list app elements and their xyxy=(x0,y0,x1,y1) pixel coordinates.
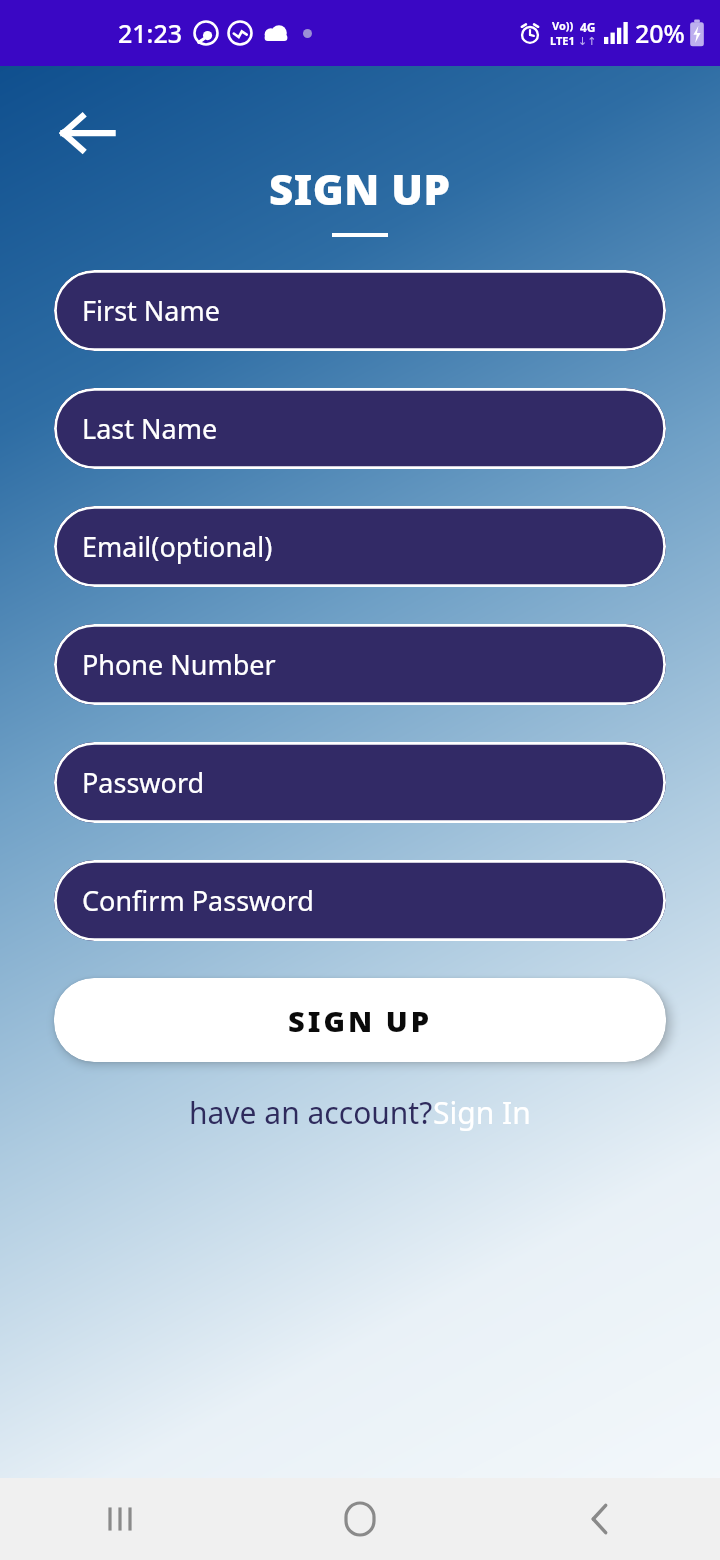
staticText: SIGN UP xyxy=(288,1001,432,1040)
button[interactable]: SIGN UP xyxy=(54,978,666,1062)
button[interactable]: Confirm Password xyxy=(54,860,666,941)
staticText: Last Name xyxy=(82,410,218,447)
button[interactable]: Sign In xyxy=(433,1092,531,1133)
button[interactable]: Back xyxy=(48,92,128,172)
staticText: 4G xyxy=(580,19,596,35)
staticText: LTE1 xyxy=(550,33,575,48)
button[interactable]: Back xyxy=(480,1478,720,1560)
staticText: 20% xyxy=(635,16,685,50)
button[interactable]: Email(optional) xyxy=(54,506,666,587)
staticText: 21:23 xyxy=(118,16,183,50)
staticText: have an account? xyxy=(189,1092,433,1133)
button[interactable]: Phone Number xyxy=(54,624,666,705)
button[interactable]: Recent apps xyxy=(0,1478,240,1560)
staticText: Sign In xyxy=(433,1092,531,1133)
button[interactable]: Password xyxy=(54,742,666,823)
staticText: Email(optional) xyxy=(82,528,273,565)
button[interactable]: Home xyxy=(240,1478,480,1560)
staticText: Password xyxy=(82,764,205,801)
staticText: ↓↑ xyxy=(578,35,597,48)
staticText: Confirm Password xyxy=(82,882,314,919)
staticText: First Name xyxy=(82,292,220,329)
button[interactable]: First Name xyxy=(54,270,666,351)
staticText: SIGN UP xyxy=(269,160,451,217)
staticText: Vo)) xyxy=(552,18,574,33)
staticText: Phone Number xyxy=(82,646,276,683)
button[interactable]: Last Name xyxy=(54,388,666,469)
